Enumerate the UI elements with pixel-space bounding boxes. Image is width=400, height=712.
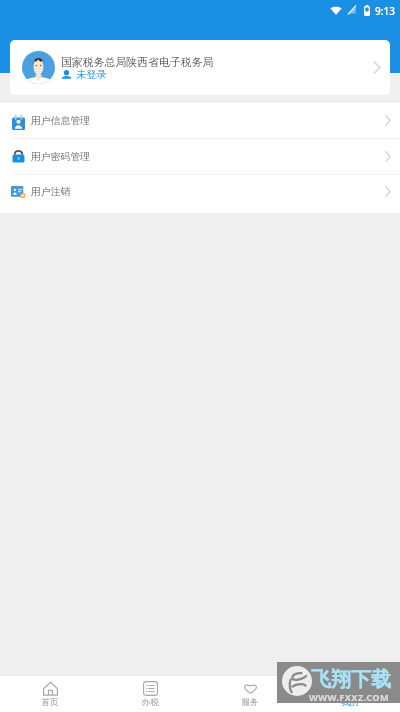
button[interactable]: 服务 <box>200 676 300 708</box>
button[interactable]: 国家税务总局陕西省电子税务局 <box>10 40 390 95</box>
staticText: 未登录 <box>76 68 107 81</box>
staticText: 飞翔下载 <box>311 667 391 692</box>
staticText: 首页 <box>41 697 59 708</box>
button[interactable]: 办税 <box>100 676 200 708</box>
staticText: 用户密码管理 <box>31 151 90 163</box>
button[interactable]: 用户注销 <box>0 175 400 208</box>
staticText: WWW.FXXZ.COM <box>309 691 390 704</box>
button[interactable]: 首页 <box>0 676 100 708</box>
staticText: 服务 <box>241 697 259 708</box>
button[interactable]: 我的 <box>300 676 400 708</box>
staticText: 办税 <box>141 697 159 708</box>
button[interactable]: 用户密码管理 <box>0 139 400 174</box>
button[interactable]: 用户信息管理 <box>0 103 400 138</box>
staticText: 国家税务总局陕西省电子税务局 <box>61 56 214 70</box>
staticText: 用户信息管理 <box>31 115 90 127</box>
staticText: 用户注销 <box>31 186 71 198</box>
staticText: 9:13 <box>375 4 395 18</box>
staticText: 我的 <box>341 697 359 708</box>
